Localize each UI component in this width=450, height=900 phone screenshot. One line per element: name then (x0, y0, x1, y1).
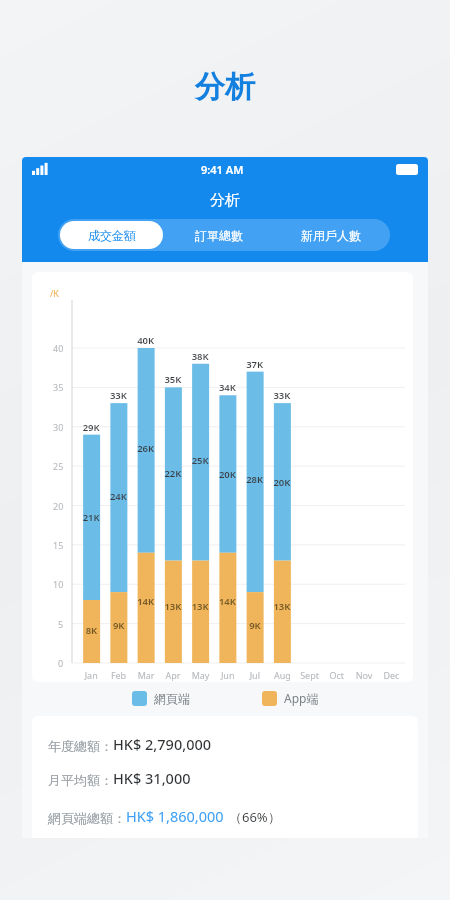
button[interactable]: 成交金額 (60, 221, 163, 249)
staticText: App端 (284, 690, 319, 706)
staticText: 分析 (195, 68, 255, 106)
staticText: 訂單總數 (195, 228, 243, 243)
button[interactable]: 新用戶人數 (274, 221, 388, 249)
staticText: 網頁端 (154, 691, 190, 706)
button[interactable]: 網頁端 (132, 691, 190, 706)
staticText: 年度總額： (48, 738, 113, 754)
staticText: 月平均額： (48, 772, 113, 788)
staticText: 9:41 AM (201, 162, 244, 177)
staticText: （66%） (229, 808, 281, 826)
staticText: 分析 (210, 191, 240, 210)
button[interactable]: App端 (262, 690, 319, 706)
button[interactable]: 訂單總數 (167, 221, 270, 249)
staticText: HK$ 31,000 (113, 768, 191, 788)
staticText: 新用戶人數 (301, 228, 361, 243)
staticText: 成交金額 (88, 228, 136, 243)
staticText: HK$ 2,790,000 (113, 734, 212, 754)
staticText: 網頁端總額： (48, 810, 126, 826)
staticText: HK$ 1,860,000 (126, 806, 224, 826)
